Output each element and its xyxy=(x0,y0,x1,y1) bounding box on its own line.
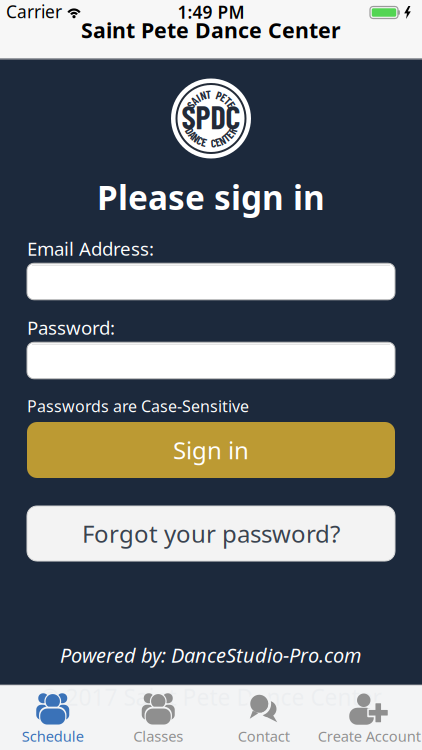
staticText: © 2017 Saint Pete Dance Center xyxy=(40,682,381,712)
staticText: Create Account xyxy=(318,726,421,746)
button[interactable] xyxy=(27,342,395,379)
button[interactable]: Contact xyxy=(208,691,320,747)
staticText: C xyxy=(197,133,202,147)
button[interactable]: Forgot your password? xyxy=(27,506,395,561)
staticText: E xyxy=(229,98,234,112)
button[interactable] xyxy=(27,263,395,300)
staticText: Email Address: xyxy=(27,236,154,261)
button[interactable]: Classes xyxy=(102,691,214,747)
staticText: N xyxy=(219,133,225,147)
staticText: P xyxy=(216,88,221,102)
staticText: N xyxy=(193,131,199,145)
button[interactable]: Sign in xyxy=(27,422,395,478)
staticText: E xyxy=(221,91,226,104)
staticText: Powered by: DanceStudio-Pro.com xyxy=(60,642,362,668)
button[interactable]: Schedule xyxy=(0,691,109,747)
staticText: T xyxy=(225,94,230,107)
staticText: Sign in xyxy=(173,434,249,466)
staticText: Schedule xyxy=(22,726,84,746)
staticText: T xyxy=(206,87,211,101)
staticText: SPDC xyxy=(181,97,240,136)
staticText: Forgot your password? xyxy=(82,518,340,549)
staticText: Passwords are Case-Sensitive xyxy=(27,395,249,417)
staticText: 1:49 PM xyxy=(177,0,244,23)
button[interactable]: Create Account xyxy=(313,691,422,747)
staticText: I xyxy=(197,91,200,104)
staticText: E xyxy=(227,128,232,141)
staticText: A xyxy=(190,128,195,141)
staticText: C xyxy=(211,136,216,150)
staticText: Please sign in xyxy=(97,175,325,219)
staticText: Carrier xyxy=(6,0,62,23)
staticText: T xyxy=(224,131,229,145)
staticText: S xyxy=(188,98,193,112)
staticText: Contact xyxy=(238,726,290,746)
staticText: Password: xyxy=(27,315,115,340)
staticText: Classes xyxy=(133,726,183,746)
staticText: D xyxy=(187,124,192,138)
staticText: E xyxy=(215,135,220,149)
staticText: Saint Pete Dance Center xyxy=(81,16,341,44)
staticText: E xyxy=(202,135,207,149)
staticText: R xyxy=(230,124,235,138)
staticText: N xyxy=(200,88,206,102)
staticText: A xyxy=(192,94,197,107)
